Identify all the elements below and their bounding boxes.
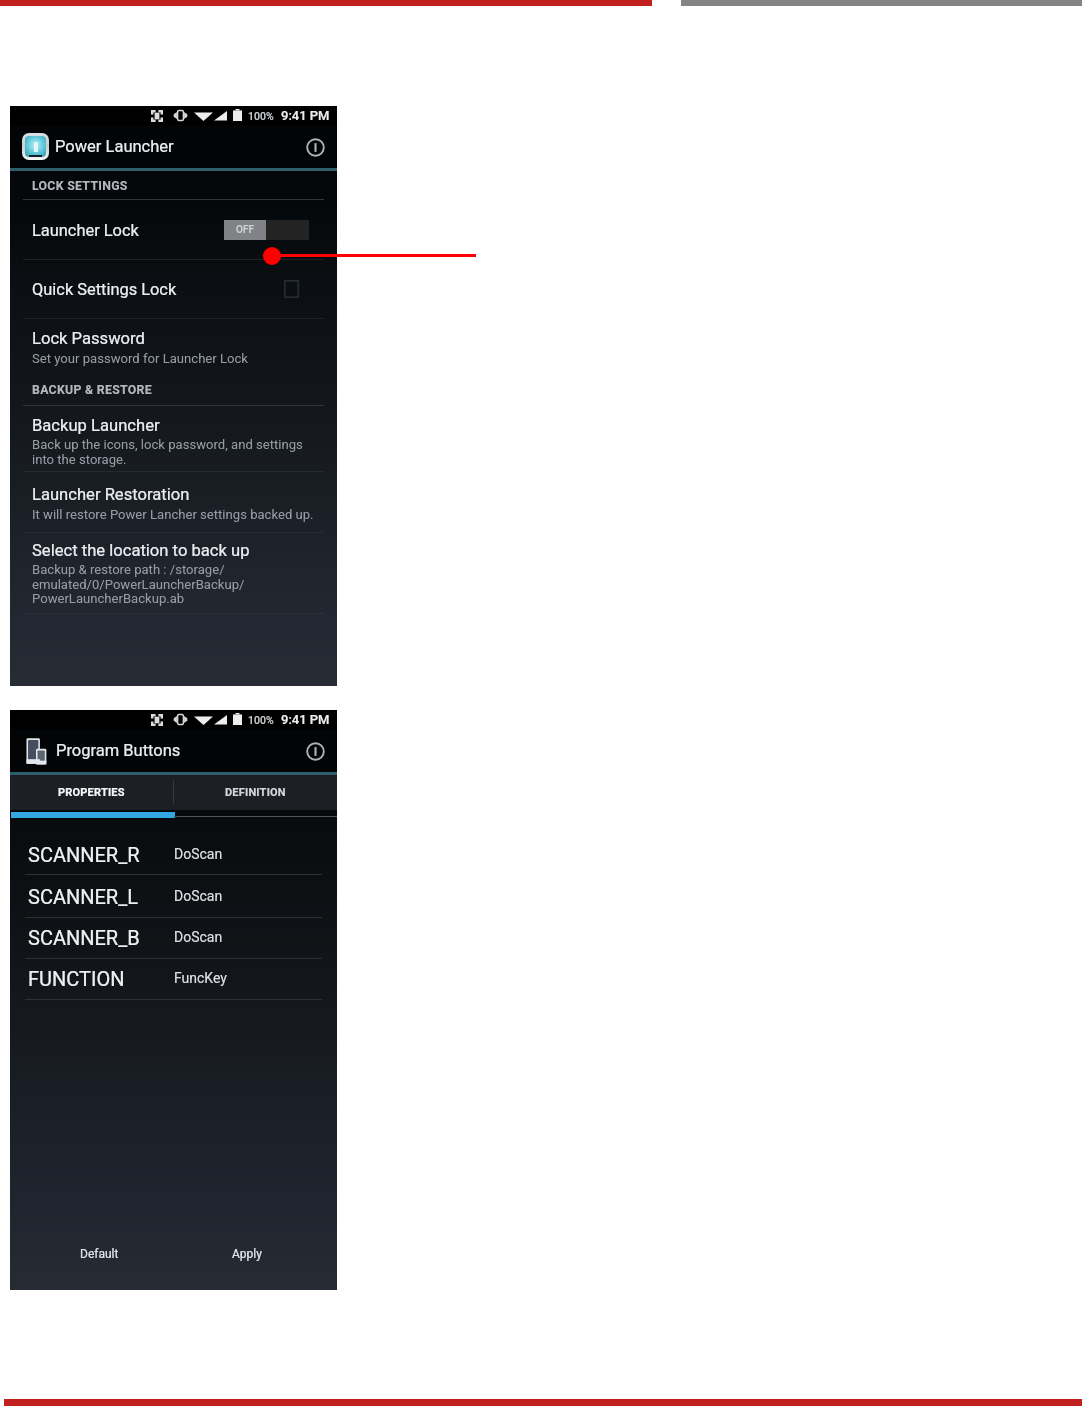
button[interactable]: SCANNER_L xyxy=(10,876,337,916)
staticText: It will restore Power Lancher settings b… xyxy=(32,507,314,522)
button[interactable] xyxy=(10,533,337,613)
staticText: 100% xyxy=(248,714,274,726)
staticText: Launcher Lock xyxy=(32,221,139,240)
staticText: DoScan xyxy=(174,846,223,862)
staticText: Back up the icons, lock password, and se… xyxy=(32,437,303,452)
staticText: Backup & restore path : /storage/ xyxy=(32,562,225,577)
staticText: into the storage. xyxy=(32,452,127,467)
button[interactable]: Info xyxy=(302,738,328,764)
button[interactable]: SCANNER_R xyxy=(10,834,337,874)
staticText: Backup Launcher xyxy=(32,416,160,435)
staticText: Select the location to back up xyxy=(32,541,250,560)
staticText: FUNCTION xyxy=(28,967,125,990)
staticText: LOCK SETTINGS xyxy=(32,179,128,193)
button[interactable]: Default xyxy=(62,1233,136,1275)
staticText: DoScan xyxy=(174,888,223,904)
staticText: OFF xyxy=(236,224,254,236)
staticText: PowerLauncherBackup.ab xyxy=(32,591,185,606)
staticText: emulated/0/PowerLauncherBackup/ xyxy=(32,577,245,592)
button[interactable]: Apply xyxy=(210,1233,284,1275)
staticText: SCANNER_B xyxy=(28,926,140,949)
button[interactable] xyxy=(10,406,337,471)
staticText: SCANNER_L xyxy=(28,885,138,908)
button[interactable]: DEFINITION xyxy=(173,775,337,810)
staticText: PROPERTIES xyxy=(58,786,125,799)
staticText: Power Launcher xyxy=(55,137,174,156)
staticText: DoScan xyxy=(174,929,223,945)
button[interactable]: PROPERTIES xyxy=(10,775,173,810)
staticText: 9:41 PM xyxy=(281,712,330,727)
staticText: DEFINITION xyxy=(225,786,286,799)
staticText: FuncKey xyxy=(174,970,227,986)
staticText: Quick Settings Lock xyxy=(32,280,177,299)
button[interactable]: Launcher Lock xyxy=(10,210,337,250)
button[interactable]: SCANNER_B xyxy=(10,917,337,957)
staticText: Set your password for Launcher Lock xyxy=(32,351,248,366)
staticText: Lock Password xyxy=(32,329,145,348)
button[interactable] xyxy=(10,472,337,532)
staticText: BACKUP & RESTORE xyxy=(32,383,152,397)
staticText: Apply xyxy=(232,1247,262,1261)
staticText: SCANNER_R xyxy=(28,843,140,866)
button[interactable]: FUNCTION xyxy=(10,958,337,998)
staticText: 9:41 PM xyxy=(281,108,330,123)
staticText: 100% xyxy=(248,110,274,122)
staticText: Launcher Restoration xyxy=(32,485,190,504)
button[interactable]: Quick Settings Lock xyxy=(10,267,337,311)
button[interactable] xyxy=(10,319,337,376)
button[interactable]: Info xyxy=(302,134,328,160)
staticText: Program Buttons xyxy=(56,741,181,760)
staticText: Default xyxy=(80,1247,119,1261)
